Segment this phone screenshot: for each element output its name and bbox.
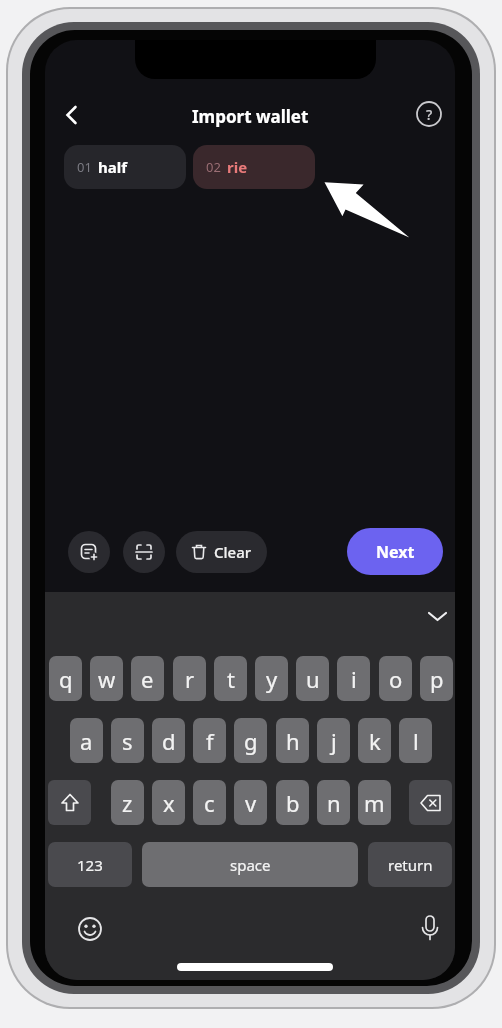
button[interactable]: return xyxy=(368,842,452,887)
button[interactable]: j xyxy=(317,718,350,763)
staticText: Clear xyxy=(214,542,252,562)
button[interactable]: h xyxy=(276,718,309,763)
staticText: m xyxy=(364,788,385,818)
button[interactable]: 01 xyxy=(64,145,186,189)
button[interactable]: f xyxy=(193,718,226,763)
staticText: i xyxy=(351,664,357,694)
staticText: Import wallet xyxy=(192,105,309,128)
staticText: p xyxy=(430,664,444,694)
staticText: u xyxy=(306,664,320,694)
button[interactable]: space xyxy=(142,842,358,887)
button[interactable] xyxy=(61,104,83,126)
button[interactable]: b xyxy=(276,780,309,825)
button[interactable]: x xyxy=(152,780,185,825)
staticText: l xyxy=(413,726,419,756)
staticText: n xyxy=(327,788,341,818)
staticText: x xyxy=(163,788,175,818)
button[interactable]: v xyxy=(234,780,267,825)
button[interactable]: u xyxy=(296,656,329,701)
button[interactable]: l xyxy=(399,718,432,763)
staticText: 02 xyxy=(206,158,221,176)
button[interactable]: z xyxy=(111,780,144,825)
staticText: w xyxy=(98,664,116,694)
staticText: space xyxy=(230,855,271,875)
button[interactable]: q xyxy=(49,656,82,701)
staticText: g xyxy=(244,726,258,756)
button[interactable]: c xyxy=(193,780,226,825)
button[interactable] xyxy=(123,531,165,573)
button[interactable] xyxy=(417,913,443,945)
button[interactable]: o xyxy=(379,656,412,701)
button[interactable]: Clear xyxy=(176,531,267,573)
button[interactable]: y xyxy=(255,656,288,701)
staticText: Next xyxy=(376,541,415,563)
button[interactable]: Next xyxy=(347,528,443,575)
button[interactable]: k xyxy=(358,718,391,763)
button[interactable]: s xyxy=(111,718,144,763)
staticText: k xyxy=(369,726,381,756)
staticText: return xyxy=(388,855,433,875)
staticText: 01 xyxy=(77,158,92,176)
staticText: 123 xyxy=(77,855,103,875)
staticText: b xyxy=(286,788,300,818)
button[interactable]: p xyxy=(420,656,453,701)
staticText: t xyxy=(227,664,235,694)
staticText: h xyxy=(286,726,300,756)
button[interactable]: t xyxy=(214,656,247,701)
button[interactable] xyxy=(48,780,91,825)
button[interactable] xyxy=(409,780,452,825)
button[interactable]: a xyxy=(70,718,103,763)
staticText: ? xyxy=(426,105,433,124)
button[interactable]: m xyxy=(358,780,391,825)
button[interactable] xyxy=(68,531,110,573)
button[interactable]: w xyxy=(90,656,123,701)
staticText: half xyxy=(98,157,128,177)
staticText: e xyxy=(141,664,154,694)
button[interactable] xyxy=(427,609,449,625)
staticText: d xyxy=(162,726,176,756)
button[interactable]: n xyxy=(317,780,350,825)
staticText: a xyxy=(80,726,93,756)
button[interactable]: 02 xyxy=(193,145,315,189)
staticText: z xyxy=(122,788,133,818)
staticText: y xyxy=(266,664,278,694)
button[interactable]: g xyxy=(234,718,267,763)
button[interactable]: i xyxy=(337,656,370,701)
staticText: c xyxy=(204,788,215,818)
staticText: o xyxy=(389,664,403,694)
staticText: r xyxy=(185,664,195,694)
button[interactable]: e xyxy=(131,656,164,701)
staticText: s xyxy=(122,726,133,756)
staticText: v xyxy=(245,788,257,818)
staticText: q xyxy=(59,664,73,694)
button[interactable]: d xyxy=(152,718,185,763)
button[interactable]: r xyxy=(173,656,206,701)
button[interactable] xyxy=(76,915,104,943)
staticText: rie xyxy=(227,157,248,177)
staticText: j xyxy=(331,726,337,756)
staticText: f xyxy=(206,726,214,756)
button[interactable]: 123 xyxy=(48,842,132,887)
button[interactable]: ? xyxy=(416,101,442,127)
